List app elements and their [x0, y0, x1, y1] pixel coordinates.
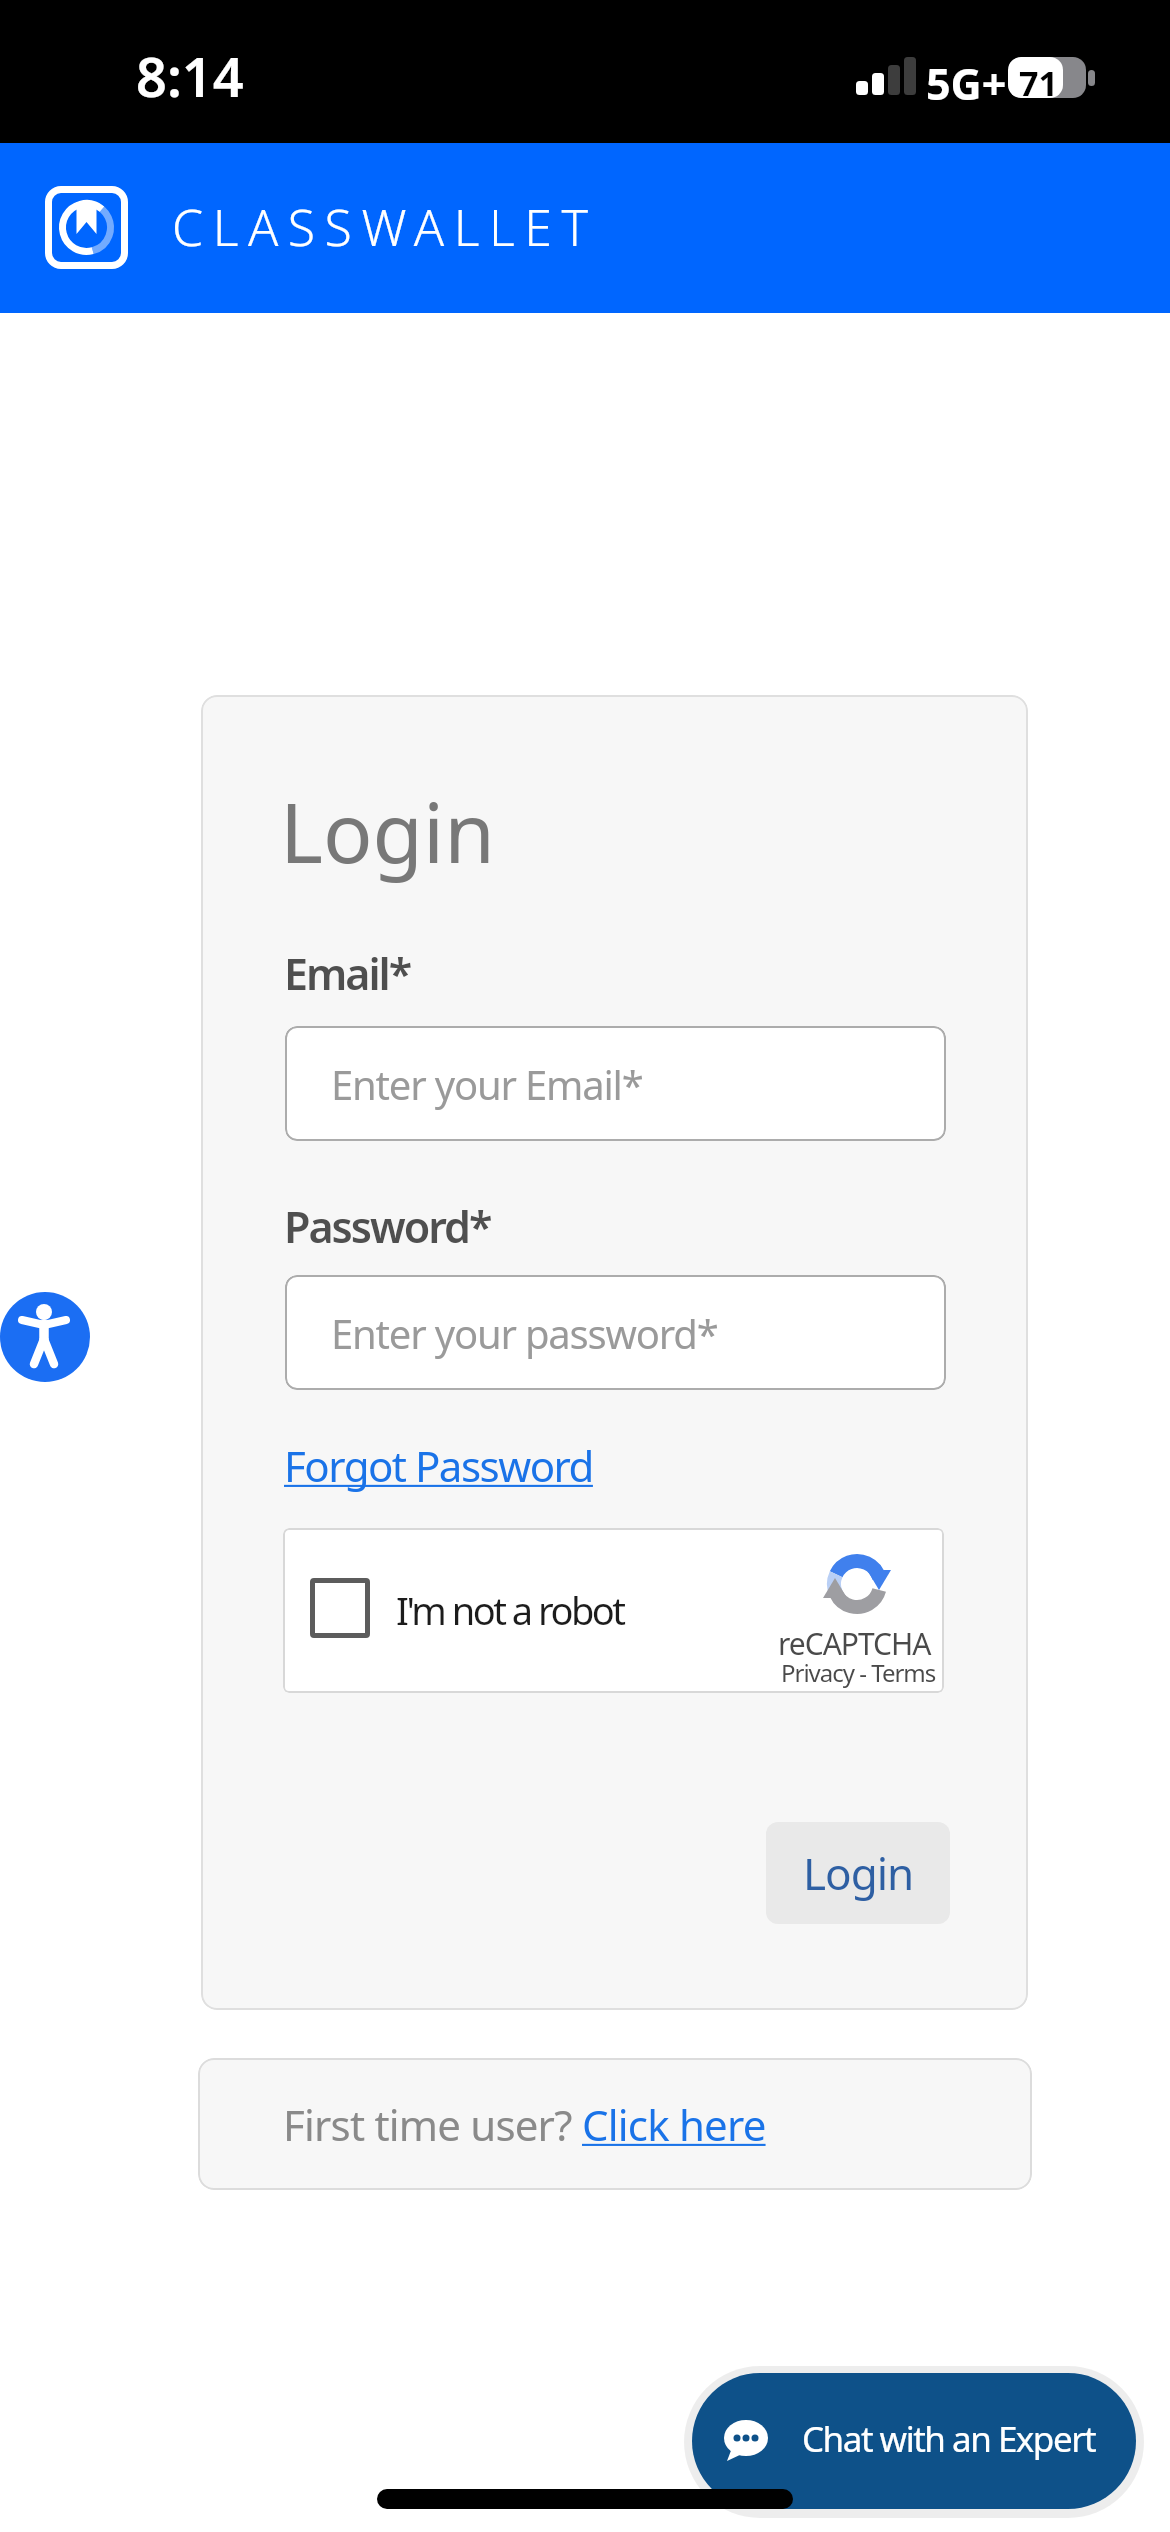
- staticText: Password*: [284, 1197, 491, 1256]
- staticText: Email*: [284, 944, 411, 1003]
- button[interactable]: [0, 1292, 90, 1382]
- staticText: Enter your Email*: [331, 1057, 643, 1111]
- staticText: Privacy - Terms: [781, 1656, 936, 1689]
- staticText: Chat with an Expert: [802, 2415, 1096, 2463]
- staticText: Login: [280, 775, 495, 887]
- staticText: 5G+: [926, 54, 1007, 113]
- button[interactable]: Login: [766, 1822, 950, 1924]
- button[interactable]: [310, 1578, 370, 1638]
- button[interactable]: Forgot Password: [284, 1437, 593, 1494]
- staticText: I'm not a robot: [396, 1584, 624, 1636]
- button[interactable]: First time user?: [198, 2058, 1032, 2190]
- staticText: Enter your password*: [331, 1306, 718, 1360]
- staticText: Click here: [582, 2096, 766, 2153]
- staticText: Login: [803, 1843, 914, 1903]
- staticText: reCAPTCHA: [778, 1623, 931, 1664]
- button[interactable]: Enter your password*: [285, 1275, 946, 1390]
- staticText: 8:14: [136, 39, 244, 113]
- button[interactable]: Enter your Email*: [285, 1026, 946, 1141]
- staticText: 71: [1019, 60, 1058, 106]
- staticText: First time user?: [283, 2096, 582, 2153]
- button[interactable]: [45, 186, 128, 269]
- staticText: CLASSWALLET: [172, 193, 598, 261]
- button[interactable]: Chat with an Expert: [692, 2373, 1136, 2509]
